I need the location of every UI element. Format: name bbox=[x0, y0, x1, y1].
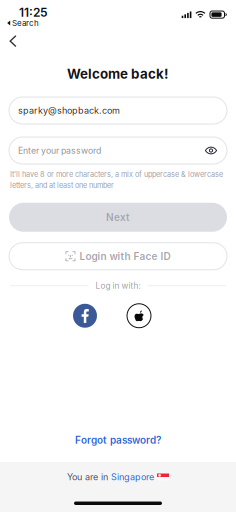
staticText: Enter your password bbox=[18, 145, 101, 156]
staticText: Next bbox=[106, 211, 130, 223]
staticText: You are in bbox=[67, 471, 108, 482]
button[interactable]: Back bbox=[2, 30, 24, 52]
button[interactable]: Log in with Apple bbox=[127, 304, 151, 328]
staticText: It'll have 8 or more characters, a mix o… bbox=[10, 170, 223, 179]
staticText: Search bbox=[12, 18, 39, 28]
staticText: sparky@shopback.com bbox=[18, 105, 120, 116]
staticText: Log in with: bbox=[95, 281, 140, 291]
button[interactable]: Login with Face ID bbox=[9, 243, 227, 270]
button[interactable]: Next bbox=[9, 203, 227, 232]
staticText: 11:25 bbox=[19, 5, 48, 20]
button[interactable]: Forgot password? bbox=[75, 429, 161, 451]
button[interactable]: Singapore bbox=[111, 471, 169, 482]
staticText: Singapore bbox=[111, 471, 154, 482]
staticText: Forgot password? bbox=[75, 434, 161, 446]
button[interactable]: Show password bbox=[202, 139, 220, 161]
staticText: Login with Face ID bbox=[79, 250, 170, 262]
staticText: letters, and at least one number bbox=[10, 181, 114, 190]
button[interactable]: Log in with Facebook bbox=[73, 304, 97, 328]
staticText: Welcome back! bbox=[67, 66, 169, 82]
